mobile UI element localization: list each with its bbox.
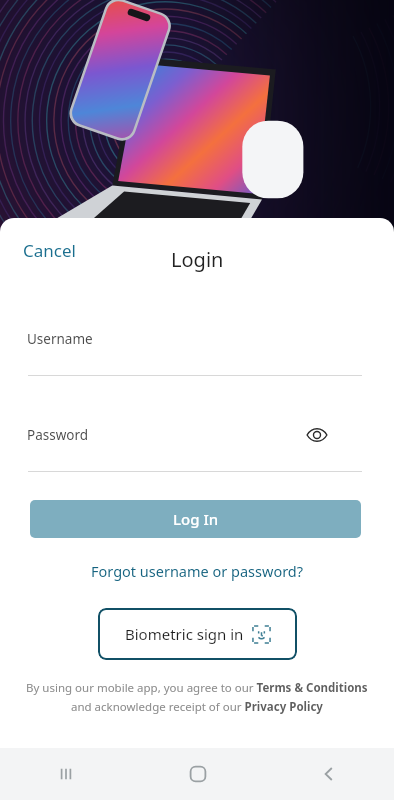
button[interactable]: Cancel	[11, 231, 88, 270]
staticText: Forgot username or password?	[91, 561, 304, 581]
button[interactable]: Forgot username or password?	[83, 556, 312, 586]
staticText: By using our mobile app, you agree to ou…	[26, 680, 368, 696]
button[interactable]: Log In	[30, 500, 361, 538]
staticText: Log In	[173, 509, 219, 529]
button[interactable]: Biometric sign in	[98, 608, 297, 660]
staticText: Login	[171, 246, 224, 273]
button[interactable]: Show password	[299, 417, 335, 453]
button[interactable]: Home	[132, 748, 263, 800]
button[interactable]: Recent apps	[0, 748, 132, 800]
staticText: Password	[27, 426, 89, 444]
staticText: and acknowledge receipt of our Privacy P…	[71, 699, 323, 715]
staticText: Cancel	[23, 239, 76, 262]
staticText: Username	[27, 330, 93, 348]
staticText: Biometric sign in	[125, 624, 244, 644]
button[interactable]: Back	[263, 748, 394, 800]
